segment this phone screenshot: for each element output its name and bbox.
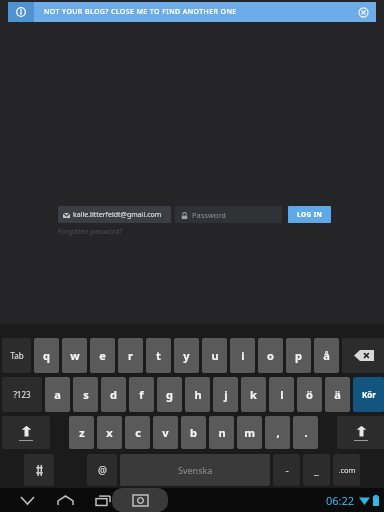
staticText: - — [285, 463, 289, 477]
staticText: Svenska — [178, 464, 213, 476]
staticText: c — [135, 425, 141, 440]
staticText: m — [244, 425, 255, 440]
staticText: u — [211, 348, 219, 363]
button[interactable]: LOG IN — [288, 206, 331, 223]
button[interactable]: Home — [48, 488, 82, 512]
staticText: NOT YOUR BLOG? CLOSE ME TO FIND ANOTHER … — [44, 7, 237, 17]
button[interactable]: Kör — [353, 377, 384, 412]
button[interactable]: Recent apps — [86, 488, 120, 512]
staticText: v — [162, 425, 169, 440]
button[interactable]: l — [269, 377, 294, 412]
button[interactable]: d — [101, 377, 126, 412]
button[interactable]: j — [213, 377, 238, 412]
button[interactable]: v — [153, 416, 178, 449]
button[interactable]: Shift — [2, 416, 50, 449]
button[interactable]: i — [230, 338, 255, 373]
button[interactable]: ä — [325, 377, 350, 412]
button[interactable]: q — [34, 338, 59, 373]
staticText: t — [156, 348, 161, 363]
staticText: . — [304, 425, 308, 440]
staticText: f — [139, 387, 144, 402]
staticText: g — [166, 387, 173, 402]
staticText: _ — [314, 463, 319, 477]
staticText: r — [128, 348, 133, 363]
button[interactable]: ö — [297, 377, 322, 412]
button[interactable]: Backspace — [342, 338, 384, 373]
button[interactable]: r — [118, 338, 143, 373]
staticText: k — [250, 387, 257, 402]
staticText: h — [194, 387, 202, 402]
button[interactable]: x — [97, 416, 122, 449]
staticText: i — [241, 348, 245, 363]
staticText: q — [43, 348, 50, 363]
staticText: ?123 — [13, 389, 31, 400]
button[interactable]: p — [286, 338, 311, 373]
staticText: d — [110, 387, 117, 402]
button[interactable]: å — [314, 338, 339, 373]
staticText: .com — [338, 465, 356, 475]
button[interactable]: t — [146, 338, 171, 373]
staticText: a — [54, 387, 61, 402]
staticText: e — [99, 348, 106, 363]
button[interactable]: Shift — [337, 416, 384, 449]
button[interactable]: k — [241, 377, 266, 412]
staticText: p — [295, 348, 302, 363]
button[interactable]: u — [202, 338, 227, 373]
button[interactable]: - — [273, 454, 300, 486]
staticText: l — [280, 387, 284, 402]
staticText: b — [190, 425, 197, 440]
button[interactable]: ?123 — [2, 377, 42, 412]
button[interactable]: , — [265, 416, 290, 449]
staticText: , — [276, 425, 280, 440]
button[interactable]: s — [73, 377, 98, 412]
staticText: LOG IN — [297, 210, 323, 219]
button[interactable]: Password — [175, 206, 282, 223]
button[interactable]: _ — [303, 454, 330, 486]
staticText: w — [70, 348, 80, 363]
button[interactable]: w — [62, 338, 87, 373]
staticText: Password — [192, 210, 226, 220]
button[interactable]: o — [258, 338, 283, 373]
staticText: @ — [98, 463, 107, 477]
button[interactable]: Screenshot — [112, 488, 168, 512]
button[interactable]: Forgotten password? — [58, 227, 123, 236]
staticText: x — [106, 425, 113, 440]
staticText: z — [79, 425, 85, 440]
button[interactable]: e — [90, 338, 115, 373]
staticText: Kör — [362, 389, 376, 400]
button[interactable]: Tab — [2, 338, 31, 373]
button[interactable]: kalle.litterfeldt@gmail.com — [58, 206, 171, 223]
staticText: o — [267, 348, 274, 363]
staticText: kalle.litterfeldt@gmail.com — [73, 210, 162, 220]
button[interactable]: Information — [8, 2, 376, 22]
button[interactable]: z — [69, 416, 94, 449]
button[interactable]: Back — [10, 488, 44, 512]
staticText: j — [224, 387, 228, 402]
button[interactable]: n — [209, 416, 234, 449]
staticText: å — [323, 348, 330, 363]
button[interactable]: b — [181, 416, 206, 449]
staticText: n — [218, 425, 226, 440]
button[interactable]: a — [45, 377, 70, 412]
staticText: Tab — [10, 350, 24, 361]
button[interactable]: c — [125, 416, 150, 449]
button[interactable]: Keyboard settings — [24, 454, 54, 486]
staticText: ä — [334, 387, 341, 402]
staticText: 06:22 — [326, 493, 355, 508]
button[interactable]: Information — [8, 2, 34, 22]
button[interactable]: @ — [87, 454, 117, 486]
staticText: y — [183, 348, 190, 363]
button[interactable]: g — [157, 377, 182, 412]
button[interactable]: h — [185, 377, 210, 412]
button[interactable]: Svenska — [120, 454, 270, 486]
button[interactable]: y — [174, 338, 199, 373]
staticText: ö — [306, 387, 313, 402]
button[interactable]: . — [293, 416, 318, 449]
button[interactable]: .com — [333, 454, 360, 486]
staticText: s — [83, 387, 89, 402]
button[interactable]: m — [237, 416, 262, 449]
button[interactable]: f — [129, 377, 154, 412]
button[interactable]: Close — [356, 5, 370, 19]
